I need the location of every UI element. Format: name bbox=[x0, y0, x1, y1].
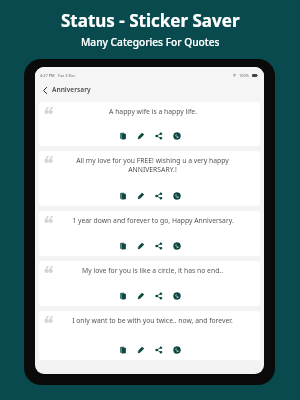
button[interactable]: Edit bbox=[137, 242, 145, 250]
button[interactable]: Edit bbox=[137, 132, 145, 140]
button[interactable]: Edit bbox=[137, 192, 145, 200]
button[interactable]: My love for you is like a circle, it has… bbox=[39, 261, 260, 306]
button[interactable]: Share bbox=[155, 132, 163, 140]
staticText: I only want to be with you twice.. now, … bbox=[72, 316, 233, 325]
staticText: A happy wife is a happy life. bbox=[109, 107, 197, 116]
staticText: My love for you is like a circle, it has… bbox=[82, 266, 223, 275]
button[interactable]: Copy bbox=[119, 132, 127, 140]
button[interactable]: WhatsApp bbox=[173, 346, 181, 354]
button[interactable]: Back bbox=[39, 84, 51, 96]
button[interactable]: Share bbox=[155, 242, 163, 250]
button[interactable]: Share bbox=[155, 192, 163, 200]
button[interactable]: Copy bbox=[119, 192, 127, 200]
button[interactable]: I only want to be with you twice.. now, … bbox=[39, 311, 260, 360]
staticText: Anniversary bbox=[52, 85, 91, 94]
staticText: 1 year down and forever to go, Happy Ann… bbox=[72, 216, 234, 225]
button[interactable]: Edit bbox=[137, 292, 145, 300]
button[interactable]: WhatsApp bbox=[173, 292, 181, 300]
button[interactable]: A happy wife is a happy life. bbox=[39, 102, 260, 146]
staticText: 100% bbox=[239, 73, 249, 78]
button[interactable]: Copy bbox=[119, 242, 127, 250]
button[interactable]: WhatsApp bbox=[173, 242, 181, 250]
button[interactable]: WhatsApp bbox=[173, 132, 181, 140]
button[interactable]: Share bbox=[155, 292, 163, 300]
staticText: 4:27 PM Tue 3 Dec bbox=[40, 73, 76, 78]
staticText: Status - Sticker Saver bbox=[61, 9, 240, 32]
button[interactable]: Edit bbox=[137, 346, 145, 354]
staticText: All my love for you FREE! wishing u a ve… bbox=[76, 156, 229, 174]
button[interactable]: Copy bbox=[119, 292, 127, 300]
button[interactable]: WhatsApp bbox=[173, 192, 181, 200]
button[interactable]: 1 year down and forever to go, Happy Ann… bbox=[39, 211, 260, 256]
button[interactable]: Copy bbox=[119, 346, 127, 354]
staticText: Many Categories For Quotes bbox=[81, 35, 220, 49]
button[interactable]: Share bbox=[155, 346, 163, 354]
button[interactable]: All my love for you FREE! wishing u a ve… bbox=[39, 151, 260, 206]
